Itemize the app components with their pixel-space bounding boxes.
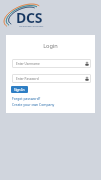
- button[interactable]: Create your own Company: [12, 102, 55, 107]
- staticText: Sign In: [14, 88, 25, 92]
- staticText: Enter Username: [16, 62, 85, 66]
- staticText: Technology at its best: [19, 24, 44, 27]
- button[interactable]: Forgot password?: [12, 96, 41, 101]
- other: Lock: [85, 77, 89, 81]
- button[interactable]: Enter Password: [12, 74, 91, 83]
- staticText: Create your own Company: [12, 102, 55, 107]
- staticText: Forgot password?: [12, 96, 41, 101]
- button[interactable]: Enter Username: [12, 59, 91, 68]
- staticText: Enter Password: [16, 77, 85, 81]
- button[interactable]: Sign In: [11, 86, 28, 93]
- staticText: Login: [6, 42, 95, 50]
- other: Lock: [85, 62, 89, 66]
- staticText: DCS: [16, 8, 43, 27]
